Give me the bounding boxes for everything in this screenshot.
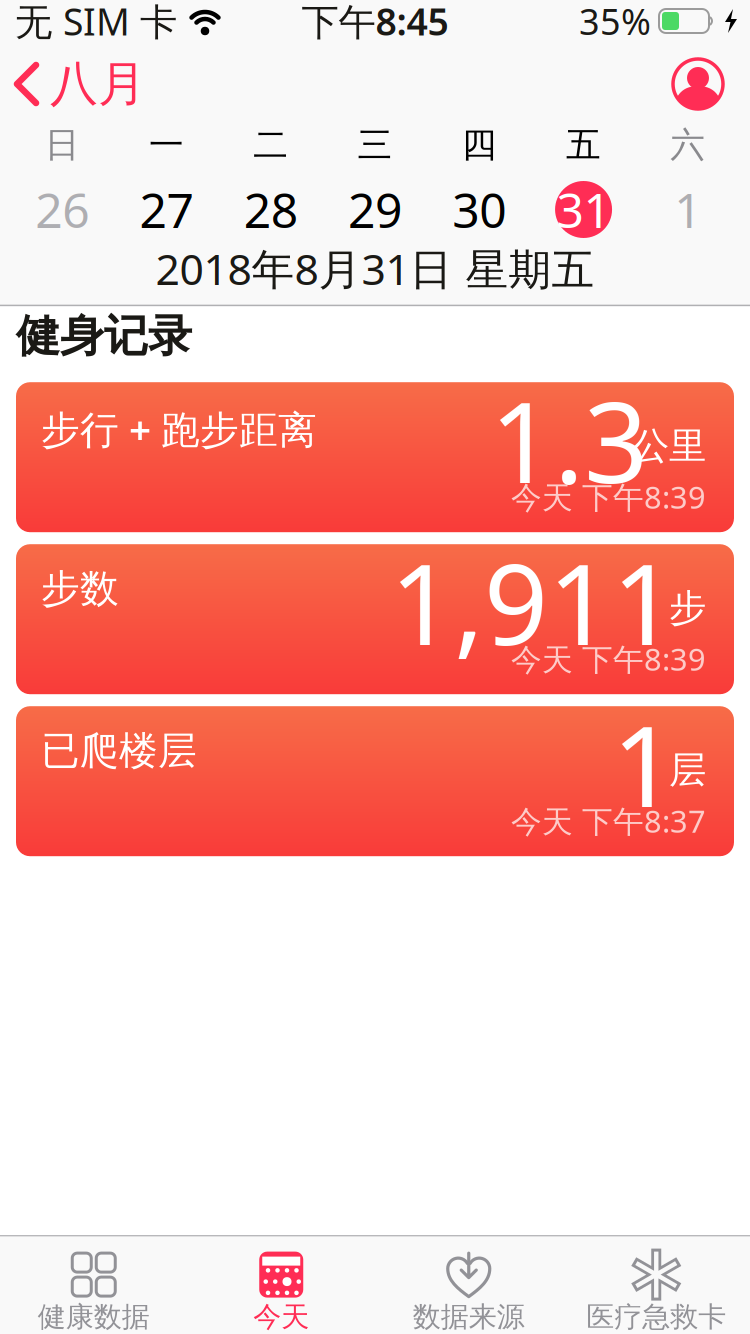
- staticText: 步数: [41, 565, 119, 613]
- staticText: 三: [357, 124, 392, 166]
- button[interactable]: 27: [114, 181, 219, 238]
- button[interactable]: 步行 + 跑步距离: [16, 382, 734, 532]
- button[interactable]: 31: [531, 181, 636, 238]
- staticText: 二: [253, 124, 288, 166]
- button[interactable]: 步数: [16, 544, 734, 694]
- staticText: 29: [348, 178, 402, 241]
- button[interactable]: 30: [427, 181, 531, 238]
- staticText: 一: [149, 124, 184, 166]
- button[interactable]: 26: [10, 181, 114, 238]
- button[interactable]: 数据来源: [375, 1252, 562, 1334]
- staticText: 31: [557, 178, 611, 241]
- staticText: 公里: [632, 423, 706, 469]
- staticText: 1: [612, 689, 676, 838]
- button[interactable]: [672, 58, 750, 110]
- staticText: 28: [244, 178, 298, 241]
- staticText: 2018年8月31日 星期五: [155, 240, 594, 297]
- staticText: 健康数据: [38, 1300, 150, 1334]
- staticText: 无 SIM 卡: [15, 0, 177, 46]
- staticText: 今天 下午8:37: [511, 800, 706, 841]
- staticText: 今天 下午8:39: [511, 638, 706, 679]
- staticText: 下午8:45: [301, 0, 448, 46]
- button[interactable]: 健康数据: [0, 1252, 187, 1334]
- button[interactable]: 29: [323, 181, 427, 238]
- staticText: 健身记录: [16, 309, 192, 363]
- staticText: 四: [462, 124, 497, 166]
- button[interactable]: 今天: [187, 1252, 375, 1334]
- staticText: 日: [45, 124, 80, 166]
- staticText: 六: [670, 124, 705, 166]
- staticText: 医疗急救卡: [586, 1300, 726, 1334]
- staticText: 1,911: [390, 527, 676, 676]
- staticText: 步: [669, 585, 706, 631]
- staticText: 已爬楼层: [41, 727, 197, 775]
- staticText: 27: [139, 178, 193, 241]
- button[interactable]: 已爬楼层: [16, 706, 734, 856]
- staticText: 35%: [579, 0, 651, 45]
- staticText: 数据来源: [413, 1300, 525, 1334]
- button[interactable]: 28: [219, 181, 323, 238]
- staticText: 步行 + 跑步距离: [41, 403, 317, 454]
- button[interactable]: 八月: [0, 54, 146, 113]
- staticText: 今天: [253, 1300, 309, 1334]
- staticText: 26: [35, 178, 89, 241]
- staticText: 八月: [50, 54, 146, 113]
- staticText: 层: [669, 747, 706, 793]
- staticText: 1.3: [490, 365, 648, 514]
- button[interactable]: 医疗急救卡: [562, 1252, 750, 1334]
- staticText: 今天 下午8:39: [511, 476, 706, 517]
- button[interactable]: 1: [636, 181, 740, 238]
- staticText: 1: [674, 178, 701, 241]
- staticText: 30: [452, 178, 506, 241]
- staticText: 五: [566, 124, 601, 166]
